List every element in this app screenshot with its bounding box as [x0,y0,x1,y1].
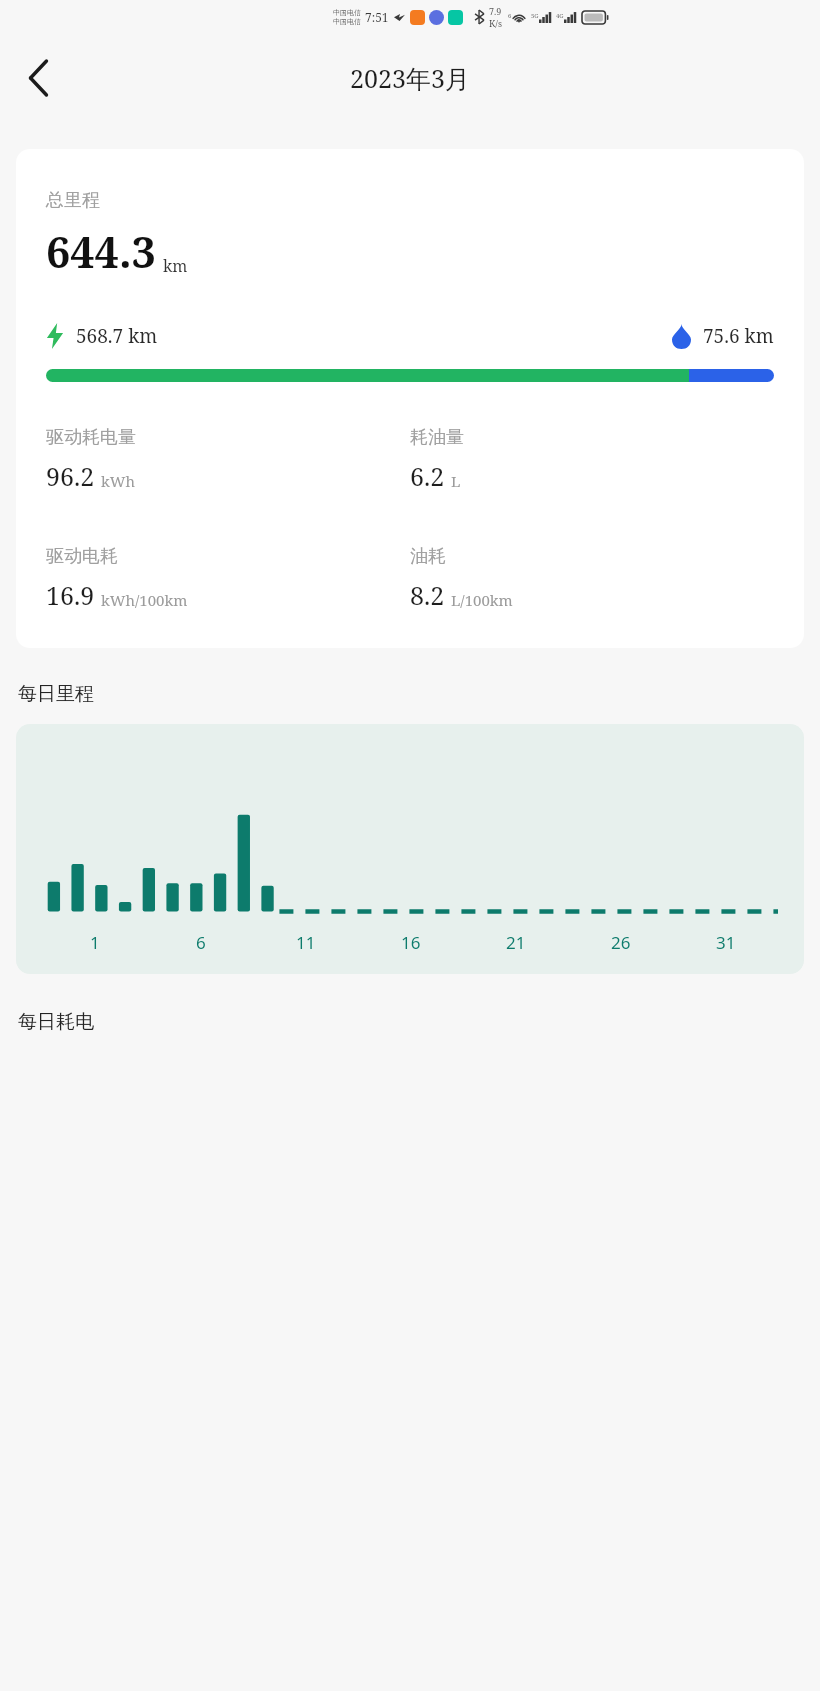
button[interactable]: 1 [16,724,804,974]
staticText: 6 [196,931,206,954]
staticText: 11 [296,931,316,954]
staticText: km [163,255,188,277]
staticText: 总里程 [46,189,100,212]
button[interactable]: 总里程 [16,149,804,648]
staticText: 8.2 [410,578,445,612]
staticText: 驱动耗电量 [46,426,136,449]
button[interactable]: Back [10,50,66,106]
staticText: 每日里程 [18,682,94,706]
staticText: 4G [556,12,564,20]
staticText: 6 [508,12,512,20]
staticText: 7:51 [365,9,389,25]
staticText: 6.2 [410,459,445,493]
staticText: 644.3 [46,222,156,281]
staticText: 5G [531,12,539,20]
staticText: 96.2 [46,459,95,493]
staticText: 2023年3月 [350,61,470,95]
staticText: L/100km [451,590,513,610]
staticText: kWh [101,471,136,491]
staticText: 568.7 km [76,323,158,349]
staticText: 31 [716,931,736,954]
staticText: 中国电信 [333,8,361,17]
staticText: 耗油量 [410,426,464,449]
staticText: K/s [489,17,502,29]
staticText: 中国电信 [333,17,361,26]
staticText: kWh/100km [101,590,188,610]
staticText: 每日耗电 [18,1010,94,1034]
staticText: 75.6 km [703,323,774,349]
staticText: 7.9 [489,5,502,17]
staticText: 油耗 [410,545,446,568]
staticText: 21 [506,931,526,954]
staticText: 16.9 [46,578,95,612]
staticText: 1 [90,931,100,954]
staticText: 16 [401,931,421,954]
staticText: 26 [611,931,631,954]
staticText: 驱动电耗 [46,545,118,568]
staticText: L [451,471,461,491]
